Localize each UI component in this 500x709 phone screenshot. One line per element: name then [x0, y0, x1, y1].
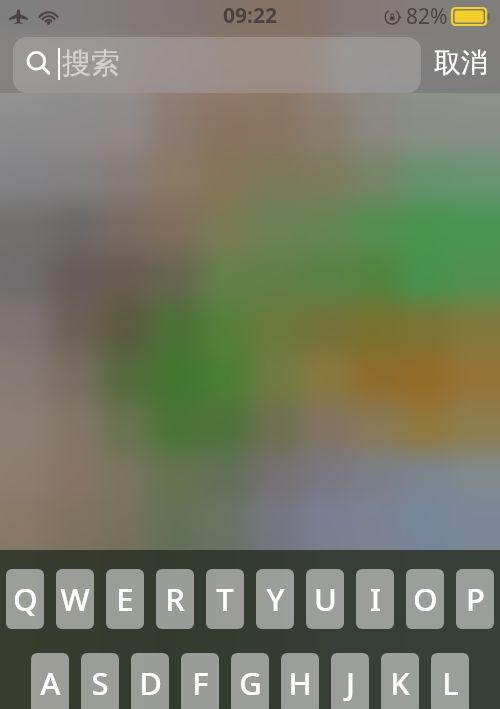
staticText: L [442, 662, 459, 704]
staticText: 搜索 [62, 45, 120, 82]
staticText: Y [266, 578, 285, 620]
staticText: G [239, 662, 262, 704]
staticText: 取消 [434, 46, 488, 80]
button[interactable]: 搜索 [13, 37, 421, 93]
button[interactable]: S [81, 653, 119, 709]
staticText: U [314, 578, 337, 620]
staticText: R [165, 578, 185, 620]
button[interactable]: Q [6, 569, 44, 629]
button[interactable]: W [56, 569, 94, 629]
staticText: K [390, 662, 410, 704]
staticText: H [288, 662, 312, 704]
button[interactable]: T [206, 569, 244, 629]
button[interactable]: L [431, 653, 469, 709]
button[interactable]: E [106, 569, 144, 629]
staticText: O [413, 578, 438, 620]
button[interactable]: U [306, 569, 344, 629]
staticText: F [192, 662, 209, 704]
staticText: A [40, 662, 61, 704]
staticText: P [466, 578, 485, 620]
button[interactable]: I [356, 569, 394, 629]
button[interactable]: K [381, 653, 419, 709]
staticText: W [60, 578, 90, 620]
staticText: D [139, 662, 162, 704]
staticText: I [370, 578, 381, 620]
button[interactable]: R [156, 569, 194, 629]
staticText: 09:22 [223, 1, 277, 30]
button[interactable]: 取消 [428, 37, 494, 93]
button[interactable]: H [281, 653, 319, 709]
button[interactable]: F [181, 653, 219, 709]
button[interactable]: O [406, 569, 444, 629]
button[interactable]: J [331, 653, 369, 709]
button[interactable]: A [31, 653, 69, 709]
staticText: 82% [406, 2, 448, 31]
staticText: E [116, 578, 134, 620]
staticText: S [91, 662, 109, 704]
staticText: Q [13, 578, 38, 620]
button[interactable]: Y [256, 569, 294, 629]
button[interactable]: G [231, 653, 269, 709]
staticText: T [216, 578, 234, 620]
button[interactable]: D [131, 653, 169, 709]
button[interactable]: P [456, 569, 494, 629]
staticText: J [346, 662, 355, 704]
